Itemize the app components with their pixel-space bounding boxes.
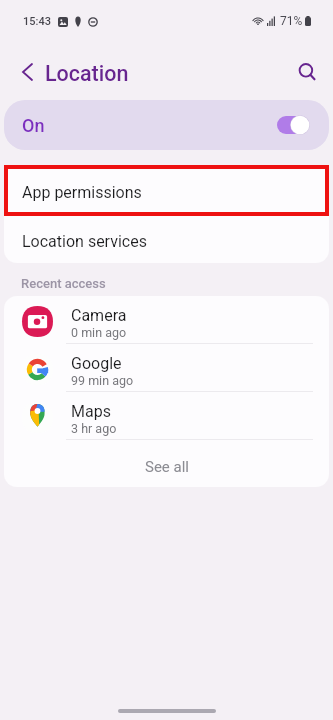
button[interactable]: Google	[4, 344, 329, 392]
button[interactable]: See all	[4, 440, 329, 487]
button[interactable]: Camera	[4, 296, 329, 344]
staticText: Location	[45, 61, 129, 86]
staticText: 0 min ago	[71, 325, 127, 340]
button[interactable]: Back	[10, 54, 45, 89]
staticText: 15:43	[23, 15, 51, 28]
staticText: Google	[71, 354, 122, 373]
button[interactable]: Location on	[277, 114, 313, 136]
staticText: 3 hr ago	[71, 421, 117, 436]
staticText: App permissions	[22, 183, 142, 202]
staticText: 71%	[280, 14, 303, 28]
staticText: On	[22, 115, 45, 136]
button[interactable]: Maps	[4, 392, 329, 440]
staticText: Location services	[22, 232, 147, 251]
staticText: 99 min ago	[71, 373, 134, 388]
button[interactable]: On	[4, 100, 329, 150]
staticText: See all	[145, 458, 189, 476]
staticText: Maps	[71, 402, 111, 421]
staticText: Camera	[71, 306, 127, 325]
staticText: Recent access	[21, 276, 106, 291]
button[interactable]: Location services	[4, 214, 329, 263]
button[interactable]: App permissions	[4, 165, 329, 214]
button[interactable]: Search	[291, 56, 326, 91]
